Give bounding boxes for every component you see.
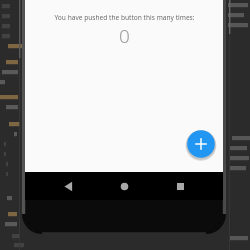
- staticText: 0: [119, 23, 130, 49]
- staticText: You have pushed the button this many tim…: [54, 13, 195, 22]
- button[interactable]: Back: [55, 173, 81, 199]
- button[interactable]: Home: [111, 173, 137, 199]
- button[interactable]: Recent apps: [167, 173, 193, 199]
- button[interactable]: Increment: [186, 129, 216, 159]
